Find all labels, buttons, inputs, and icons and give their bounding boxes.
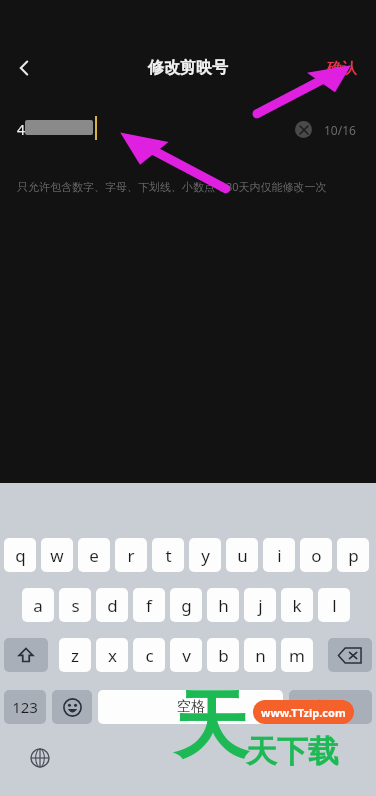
staticText: n	[255, 644, 266, 667]
button[interactable]: v	[170, 638, 202, 672]
staticText: 4	[17, 120, 26, 139]
staticText: m	[289, 644, 305, 667]
button[interactable]: 123	[4, 690, 46, 724]
staticText: r	[127, 544, 135, 567]
button[interactable]: d	[96, 588, 128, 622]
button[interactable]: m	[281, 638, 313, 672]
staticText: 空格	[177, 698, 205, 716]
staticText: 天	[174, 680, 248, 773]
staticText: a	[33, 594, 43, 617]
staticText: c	[145, 644, 154, 667]
button[interactable]: g	[170, 588, 202, 622]
staticText: 确认	[327, 59, 357, 78]
button[interactable]: q	[4, 538, 36, 572]
button[interactable]: e	[78, 538, 110, 572]
button[interactable]: 换行	[289, 690, 372, 724]
button[interactable]: z	[59, 638, 91, 672]
staticText: o	[311, 544, 322, 567]
button[interactable]: i	[263, 538, 295, 572]
button[interactable]: Back	[6, 50, 42, 86]
staticText: d	[107, 594, 118, 617]
button[interactable]: p	[337, 538, 369, 572]
staticText: 换行	[317, 698, 345, 716]
staticText: v	[182, 644, 191, 667]
staticText: q	[15, 544, 26, 567]
staticText: j	[258, 594, 263, 617]
button[interactable]: 空格	[98, 690, 283, 724]
button[interactable]: Emoji	[52, 690, 92, 724]
button[interactable]: y	[189, 538, 221, 572]
button[interactable]: x	[96, 638, 128, 672]
button[interactable]: c	[133, 638, 165, 672]
staticText: u	[237, 544, 248, 567]
button[interactable]: Clear	[295, 121, 312, 138]
staticText: 123	[12, 697, 38, 717]
staticText: i	[277, 544, 282, 567]
staticText: t	[165, 544, 172, 567]
button[interactable]: b	[207, 638, 239, 672]
button[interactable]: k	[281, 588, 313, 622]
button[interactable]: o	[300, 538, 332, 572]
button[interactable]: l	[318, 588, 350, 622]
button[interactable]: s	[59, 588, 91, 622]
button[interactable]: j	[244, 588, 276, 622]
button[interactable]: Switch language	[20, 740, 60, 776]
button[interactable]: f	[133, 588, 165, 622]
staticText: 10/16	[324, 122, 356, 138]
staticText: g	[181, 594, 192, 617]
button[interactable]: n	[244, 638, 276, 672]
button[interactable]: r	[115, 538, 147, 572]
staticText: p	[348, 544, 359, 567]
button[interactable]: w	[41, 538, 73, 572]
staticText: s	[71, 594, 80, 617]
button[interactable]: t	[152, 538, 184, 572]
button[interactable]: h	[207, 588, 239, 622]
staticText: z	[71, 644, 79, 667]
button[interactable]: 确认	[316, 54, 368, 82]
staticText: f	[146, 594, 152, 617]
button[interactable]: Shift	[4, 638, 48, 672]
button[interactable]: u	[226, 538, 258, 572]
staticText: x	[108, 644, 117, 667]
staticText: l	[332, 594, 337, 617]
staticText: h	[218, 594, 229, 617]
button[interactable]: Backspace	[328, 638, 372, 672]
staticText: w	[50, 544, 64, 567]
staticText: 只允许包含数字、字母、下划线、小数点；30天内仅能修改一次	[17, 179, 327, 194]
staticText: 天下载	[246, 732, 339, 771]
staticText: y	[201, 544, 210, 567]
staticText: b	[218, 644, 229, 667]
button[interactable]: a	[22, 588, 54, 622]
staticText: 修改剪映号	[148, 58, 228, 78]
staticText: www.TTzip.com	[261, 705, 346, 720]
staticText: k	[292, 594, 302, 617]
staticText: e	[89, 544, 99, 567]
